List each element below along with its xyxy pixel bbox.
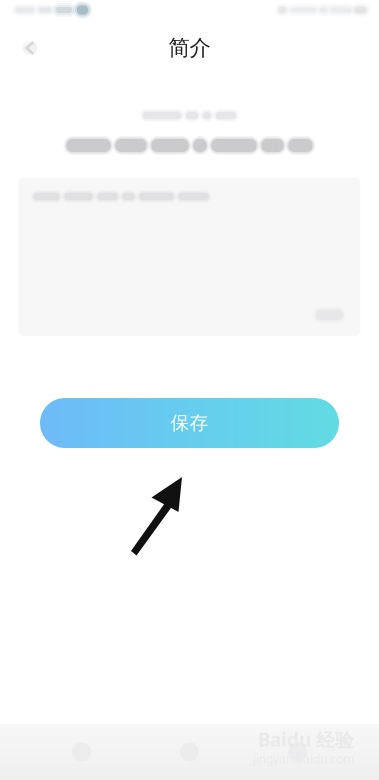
staticText: 简介 (168, 35, 210, 61)
staticText: Baidu 经验 (258, 727, 354, 752)
button[interactable]: 我的 (243, 724, 351, 780)
button[interactable]: 返回 (11, 31, 49, 65)
staticText: 保存 (170, 411, 208, 434)
button[interactable]: 保存 (40, 398, 339, 448)
